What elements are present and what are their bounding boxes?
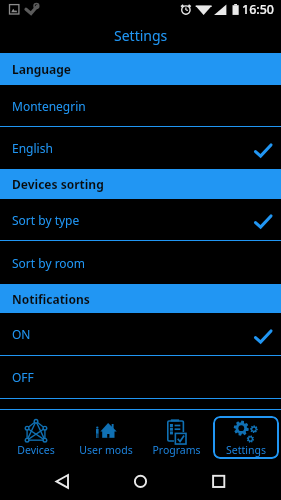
button[interactable]: Devices — [2, 416, 69, 459]
button[interactable]: Sort by room — [0, 241, 281, 284]
button[interactable]: Montenegrin — [0, 85, 281, 126]
staticText: Programs — [152, 443, 201, 457]
staticText: Settings — [226, 443, 266, 457]
button[interactable]: English — [0, 127, 281, 169]
button[interactable]: User mods — [73, 416, 139, 459]
button[interactable]: Programs — [143, 416, 209, 459]
button[interactable]: Settings — [213, 416, 279, 459]
staticText: Notifications — [12, 291, 90, 307]
button[interactable]: OFF — [0, 356, 281, 398]
button[interactable]: Sort by type — [0, 199, 281, 240]
staticText: OFF — [12, 369, 34, 385]
staticText: Devices — [17, 443, 55, 457]
staticText: Devices sorting — [12, 176, 104, 192]
button[interactable]: ON — [0, 313, 281, 355]
staticText: English — [12, 140, 53, 156]
staticText: Settings — [114, 26, 168, 45]
staticText: Sort by type — [12, 212, 80, 228]
staticText: User mods — [79, 443, 133, 457]
staticText: ON — [12, 326, 31, 342]
staticText: Sort by room — [12, 255, 86, 271]
staticText: Language — [12, 61, 72, 77]
staticText: 16:50 — [242, 1, 275, 18]
other: System navigation — [0, 464, 281, 500]
staticText: Montenegrin — [12, 98, 86, 114]
